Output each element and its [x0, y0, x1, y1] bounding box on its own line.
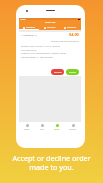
staticText: Cart [40, 128, 44, 131]
button[interactable]: Home [19, 122, 34, 132]
staticText: Account [69, 128, 77, 131]
staticText: Pending [26, 26, 35, 29]
button[interactable]: Decline [51, 69, 64, 75]
staticText: Decline [54, 71, 62, 74]
button[interactable]: Account [65, 122, 81, 132]
staticText: Previous [67, 26, 77, 29]
staticText: Current [47, 26, 56, 29]
button[interactable]: Cart [34, 122, 49, 132]
staticText: 1 Lasagna (1) [21, 33, 37, 36]
staticText: Order [54, 128, 60, 131]
button[interactable]: Current [39, 24, 60, 30]
button[interactable]: Pending [19, 24, 39, 30]
button[interactable]: Previous [60, 24, 81, 30]
staticText: Address: 2372 Cleveland Blvd, Caldwell, … [21, 52, 67, 55]
button[interactable]: Order [49, 122, 65, 132]
staticText: Home [24, 128, 30, 131]
staticText: Delivery Method: Self pickup [21, 40, 79, 43]
staticText: Order list [45, 21, 56, 24]
staticText: Accept [69, 71, 76, 74]
staticText: Delivery Time: Sat Dec 14 2019 16:00:00 … [21, 45, 60, 51]
staticText: $4.00 [69, 32, 79, 37]
staticText: Accept or decline order made to you. [5, 153, 98, 173]
staticText: Carrier [20, 18, 26, 20]
button[interactable]: Accept [66, 69, 79, 75]
staticText: Contact Details: +1 208-459-0081 [21, 56, 54, 59]
